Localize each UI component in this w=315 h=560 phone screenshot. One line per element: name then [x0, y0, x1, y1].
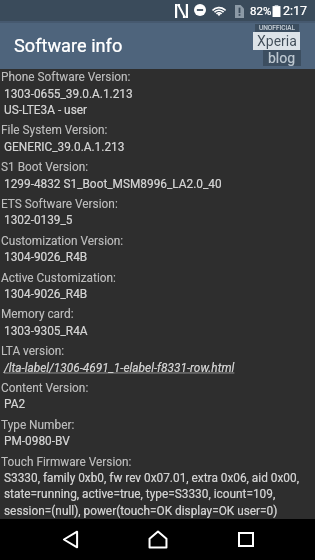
staticText: Touch Firmware Version:	[1, 455, 132, 469]
staticText: S3330, family 0xb0, fw rev 0x07.01, extr…	[4, 471, 299, 485]
staticText: Xperia	[257, 33, 297, 49]
staticText: Customization Version:	[1, 234, 124, 248]
button[interactable]: Home	[130, 519, 185, 560]
staticText: Software info	[14, 35, 123, 56]
staticText: 1302-0139_5	[4, 213, 73, 227]
staticText: UNOFFICIAL	[259, 24, 296, 32]
staticText: blog	[268, 50, 296, 66]
staticText: ETS Software Version:	[1, 197, 118, 211]
button[interactable]: Back	[43, 519, 97, 560]
staticText: state=running, active=true, type=S3330, …	[4, 487, 276, 501]
staticText: session=(null), power(touch=OK display=O…	[4, 504, 278, 518]
staticText: PM-0980-BV	[4, 434, 70, 448]
staticText: File System Version:	[1, 123, 108, 137]
staticText: PA2	[4, 397, 26, 411]
staticText: 1299-4832 S1_Boot_MSM8996_LA2.0_40	[4, 177, 222, 191]
staticText: Phone Software Version:	[1, 70, 131, 84]
staticText: LTA version:	[1, 344, 65, 358]
staticText: S1 Boot Version:	[1, 160, 89, 174]
staticText: 2:17	[283, 3, 308, 18]
staticText: Memory card:	[1, 307, 74, 321]
staticText: 1303-0655_39.0.A.1.213	[4, 87, 133, 101]
staticText: GENERIC_39.0.A.1.213	[4, 140, 125, 154]
staticText: 1303-9305_R4A	[4, 324, 88, 338]
staticText: 82%	[250, 4, 272, 17]
staticText: Content Version:	[1, 381, 89, 395]
staticText: 1304-9026_R4B	[4, 250, 88, 264]
staticText: /lta-label/1306-4691_1-elabel-f8331-row.…	[4, 361, 235, 375]
button[interactable]: Recent apps	[219, 519, 273, 560]
staticText: US-LTE3A - user	[4, 103, 88, 117]
staticText: Active Customization:	[1, 271, 116, 285]
staticText: 1304-9026_R4B	[4, 287, 88, 301]
staticText: Type Number:	[1, 418, 75, 432]
